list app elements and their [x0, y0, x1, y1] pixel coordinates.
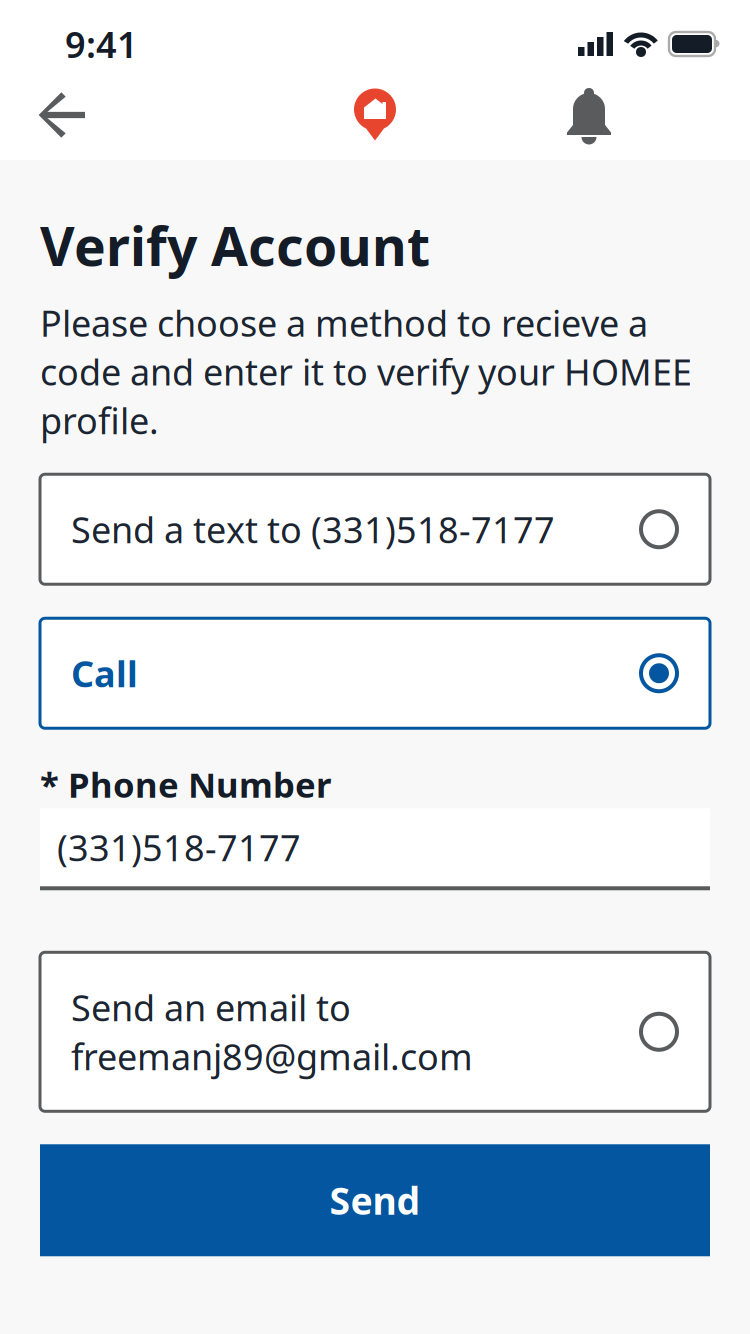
staticText: 9:41 — [65, 20, 138, 68]
staticText: Send — [329, 1175, 420, 1225]
button[interactable]: Call — [40, 618, 710, 728]
staticText: * Phone Number — [40, 761, 331, 807]
button[interactable]: Back — [11, 80, 117, 152]
staticText: Send an email to freemanj89@gmail.com — [71, 983, 473, 1080]
button[interactable]: Send an email to freemanj89@gmail.com — [40, 952, 710, 1111]
button[interactable]: Notifications — [536, 80, 642, 152]
staticText: (331)518-7177 — [57, 823, 301, 871]
button[interactable]: Send a text to (331)518-7177 — [40, 474, 710, 584]
staticText: Please choose a method to recieve a code… — [40, 299, 692, 444]
staticText: Send a text to (331)518-7177 — [71, 505, 555, 553]
button[interactable]: Send — [40, 1144, 710, 1256]
staticText: Verify Account — [40, 210, 430, 281]
staticText: Call — [71, 649, 138, 697]
